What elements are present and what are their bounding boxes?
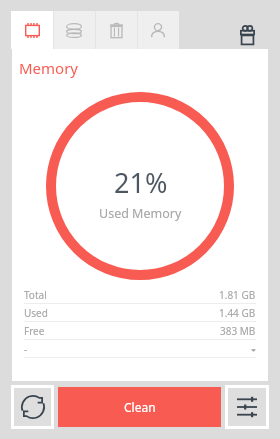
staticText: Free xyxy=(24,324,45,338)
staticText: 1.81 GB xyxy=(219,288,256,302)
button[interactable]: Settings xyxy=(228,388,266,426)
staticText: 383 MB xyxy=(220,324,256,338)
button[interactable]: Gifts xyxy=(230,17,265,52)
staticText: 21% xyxy=(114,164,168,201)
button[interactable]: Clean xyxy=(58,387,221,427)
button[interactable]: Tab xyxy=(95,11,137,49)
staticText: Used xyxy=(24,306,48,320)
button[interactable]: Tab xyxy=(137,11,179,49)
staticText: Memory xyxy=(19,58,79,78)
staticText: Total xyxy=(24,288,47,302)
button[interactable]: - xyxy=(24,340,256,357)
button[interactable]: Tab xyxy=(11,11,53,49)
button[interactable]: Tab xyxy=(53,11,95,49)
staticText: - xyxy=(24,342,28,356)
staticText: Used Memory xyxy=(99,205,182,222)
staticText: Clean xyxy=(124,399,156,415)
staticText: 1.44 GB xyxy=(219,306,256,320)
button[interactable]: Refresh xyxy=(14,388,51,426)
